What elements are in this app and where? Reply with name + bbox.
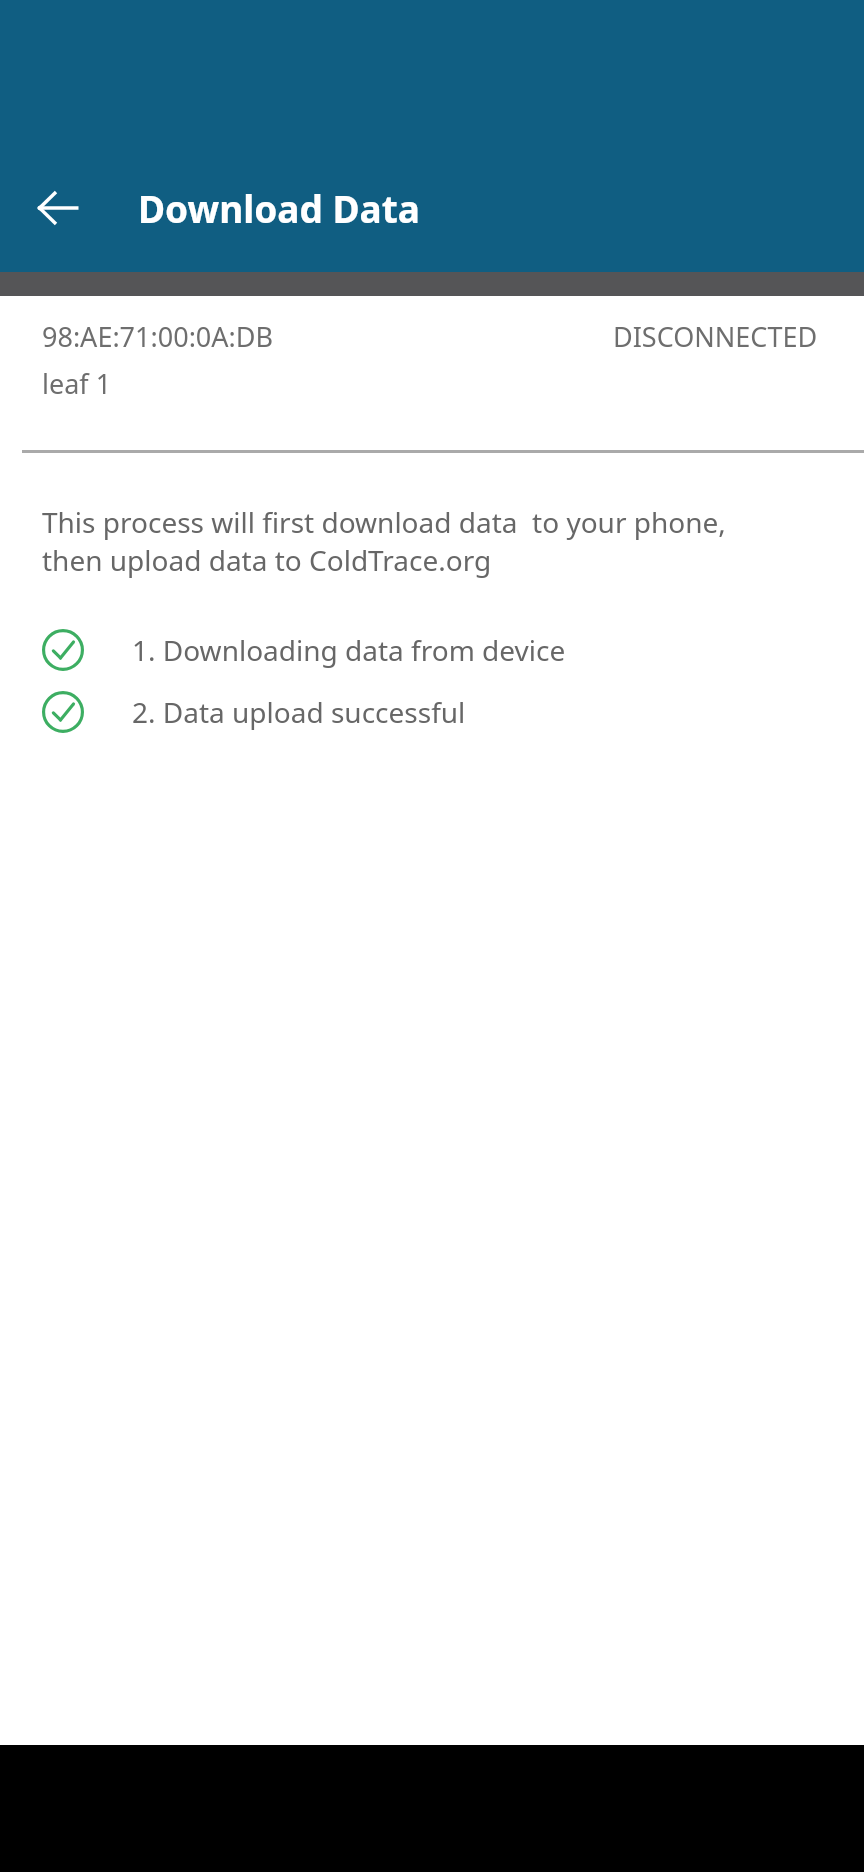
staticText: 2. Data upload successful	[132, 693, 466, 731]
staticText: 1. Downloading data from device	[132, 631, 566, 669]
button[interactable]: 2. Data upload successful	[0, 681, 864, 743]
staticText: This process will first download data to…	[42, 503, 726, 541]
button[interactable]: 1. Downloading data from device	[0, 619, 864, 681]
staticText: DISCONNECTED	[613, 318, 818, 355]
staticText: Download Data	[138, 183, 420, 233]
button[interactable]: Back	[20, 170, 96, 246]
staticText: leaf 1	[42, 365, 112, 402]
staticText: 98:AE:71:00:0A:DB	[42, 318, 274, 355]
staticText: then upload data to ColdTrace.org	[42, 541, 492, 579]
button[interactable]: 98:AE:71:00:0A:DB	[0, 318, 864, 402]
